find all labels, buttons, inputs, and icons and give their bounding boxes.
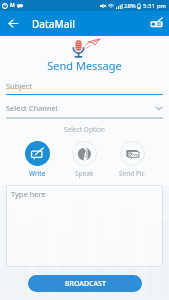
staticText: M	[10, 2, 15, 9]
staticText: Send Message	[0, 58, 169, 73]
staticText: Send Pic	[119, 169, 145, 178]
button[interactable]: Type here	[6, 185, 163, 267]
button[interactable]: Write	[25, 141, 50, 166]
staticText: Select Channel	[6, 103, 58, 113]
button[interactable]: Send Pic	[120, 141, 145, 166]
staticText: Write	[29, 169, 46, 178]
button[interactable]: Back	[0, 11, 26, 36]
button[interactable]: Select Channel	[6, 103, 163, 113]
button[interactable]: BROADCAST	[28, 275, 142, 292]
staticText: DataMail	[32, 17, 75, 31]
staticText: Select Option	[0, 125, 169, 134]
button[interactable]: Radio broadcast	[143, 11, 169, 36]
staticText: Subject	[6, 81, 32, 91]
staticText: 5:31 pm	[143, 2, 166, 10]
staticText: Type here	[11, 189, 46, 199]
staticText: 28%	[124, 2, 136, 10]
button[interactable]: Speak	[72, 141, 97, 166]
staticText: BROADCAST	[65, 279, 106, 289]
staticText: Speak	[75, 169, 94, 178]
